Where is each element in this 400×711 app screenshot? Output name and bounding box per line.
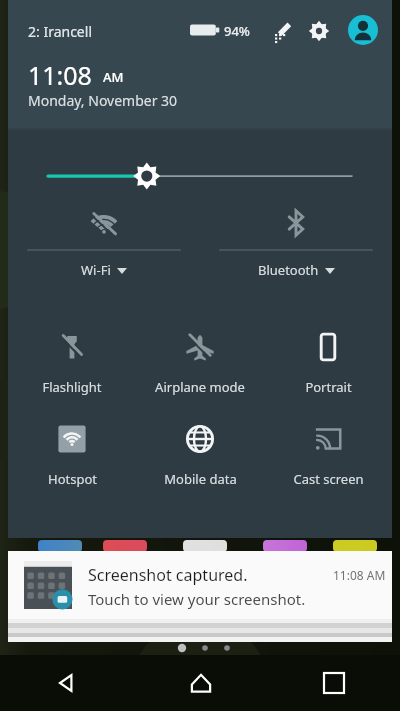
button[interactable]: Back: [0, 655, 134, 711]
staticText: 11:08 AM: [333, 567, 386, 583]
staticText: Hotspot: [48, 470, 97, 488]
button[interactable]: Flashlight: [8, 318, 136, 410]
staticText: 11:08: [28, 58, 92, 92]
button[interactable]: Brightness: [8, 130, 392, 194]
staticText: 94%: [224, 22, 250, 40]
button[interactable]: Cast screen: [264, 410, 392, 502]
button[interactable]: Settings: [304, 16, 334, 46]
button[interactable]: Bluetooth: [200, 194, 392, 302]
staticText: Portrait: [305, 378, 352, 396]
button[interactable]: Mobile data: [136, 410, 264, 502]
button[interactable]: Home: [134, 655, 267, 711]
button[interactable]: Edit quick settings: [268, 16, 298, 46]
other: Battery 94 percent: [189, 22, 219, 38]
staticText: 2: Irancell: [28, 22, 92, 41]
button[interactable]: Portrait: [264, 318, 392, 410]
staticText: Touch to view your screenshot.: [88, 589, 306, 609]
button[interactable]: Screenshot captured.: [8, 551, 392, 619]
staticText: Mobile data: [164, 470, 237, 488]
button[interactable]: Wi-Fi: [8, 194, 200, 302]
staticText: Bluetooth: [258, 261, 319, 279]
staticText: Flashlight: [42, 378, 102, 396]
staticText: Airplane mode: [155, 378, 245, 396]
staticText: Wi-Fi: [81, 261, 111, 279]
staticText: Screenshot captured.: [88, 564, 248, 586]
button[interactable]: Recent apps: [267, 655, 400, 711]
button[interactable]: Hotspot: [8, 410, 136, 502]
button[interactable]: User profile: [348, 15, 378, 45]
button[interactable]: Airplane mode: [136, 318, 264, 410]
staticText: AM: [103, 68, 124, 86]
staticText: Monday, November 30: [28, 91, 178, 110]
staticText: Cast screen: [293, 470, 364, 488]
